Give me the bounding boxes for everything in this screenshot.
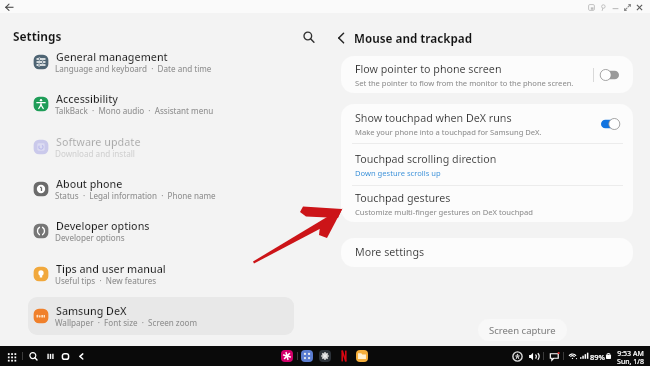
button[interactable]: All apps [301,350,313,362]
button[interactable]: Battery [604,352,613,361]
staticText: Tips and user manual [56,262,166,277]
staticText: Set the pointer to flow from the monitor… [355,78,574,88]
button[interactable]: Recent apps [45,351,56,362]
button[interactable]: About phone [28,170,294,208]
staticText: Language and keyboard · Date and time [55,63,212,74]
staticText: Samsung DeX [56,304,127,319]
button[interactable]: Home [60,351,71,362]
button[interactable]: Developer options [28,212,294,250]
button[interactable]: Navigate up [333,31,349,47]
button[interactable]: Screen capture [478,319,567,341]
staticText: Mouse and trackpad [354,31,472,47]
staticText: Make your phone into a touchpad for Sams… [355,127,542,137]
staticText: About phone [56,177,123,192]
button[interactable]: General management [28,43,294,81]
button[interactable]: Wi-Fi [568,351,578,361]
button[interactable]: Notifications [549,351,560,362]
staticText: Sun, 1/8 [617,357,644,366]
button[interactable]: Settings [319,350,331,362]
button[interactable]: More settings [341,238,633,267]
button[interactable]: Touchpad scrolling direction [341,144,633,185]
staticText: More settings [355,245,425,260]
button[interactable]: Maximize [624,4,631,11]
button[interactable]: Back [4,2,15,13]
button[interactable]: Pin window [600,4,607,11]
button[interactable]: Touchpad gestures [341,186,633,222]
staticText: Customize multi-finger gestures on DeX t… [355,207,533,217]
staticText: Settings [13,28,62,44]
staticText: Touchpad gestures [355,191,451,206]
staticText: Useful tips · New features [55,275,157,286]
button[interactable]: Accessibility [28,85,294,123]
button[interactable]: Software update [28,128,294,166]
staticText: Screen capture [489,324,556,337]
staticText: Software update [56,135,141,150]
staticText: Flow pointer to phone screen [355,62,502,77]
staticText: Download and install [55,148,135,159]
staticText: Touchpad scrolling direction [355,152,497,167]
button[interactable]: Accessibility shortcut [512,351,523,362]
staticText: Down gesture scrolls up [355,168,441,178]
button[interactable]: Search [300,28,317,45]
staticText: Show touchpad when DeX runs [355,111,512,126]
button[interactable]: Show touchpad when DeX runs, on [601,118,619,130]
staticText: 9:53 AM [617,349,644,359]
button[interactable]: Tips and user manual [28,255,294,293]
button[interactable]: Netflix [339,350,349,362]
staticText: 89% [590,352,605,362]
button[interactable]: Show touchpad when DeX runs [341,104,633,143]
button[interactable]: Split screen view [588,4,595,11]
staticText: TalkBack · Mono audio · Assistant menu [55,105,214,116]
button[interactable]: My Files [356,350,368,362]
button[interactable]: Flow pointer to phone screen, off [601,69,619,81]
button[interactable]: Minimize [612,4,619,11]
button[interactable]: Volume [528,351,539,362]
button[interactable]: Flow pointer to phone screen [341,56,633,93]
button[interactable]: Close [636,4,643,11]
staticText: Developer options [56,219,150,234]
button[interactable]: Samsung DeX [28,297,294,335]
staticText: Developer options [55,232,125,243]
button[interactable]: Gallery [281,350,293,362]
button[interactable]: Back [76,351,87,362]
staticText: Status · Legal information · Phone name [55,190,216,201]
button[interactable]: Search [28,351,39,362]
staticText: Accessibility [56,92,118,107]
staticText: General management [56,50,168,65]
staticText: Wallpaper · Font size · Screen zoom [55,317,198,328]
button[interactable]: Apps [6,351,17,362]
button[interactable]: Mobile signal [579,351,589,361]
